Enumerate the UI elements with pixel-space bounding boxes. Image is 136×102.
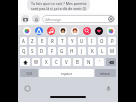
button[interactable]: T — [58, 37, 66, 45]
button[interactable]: F — [48, 47, 56, 55]
button[interactable]: R — [48, 37, 56, 45]
button[interactable]: ' — [95, 58, 104, 66]
button[interactable]: P — [108, 37, 116, 45]
button[interactable]: O — [98, 37, 106, 45]
staticText: E — [41, 38, 44, 44]
button[interactable]: Backspace — [106, 58, 116, 66]
staticText: R — [51, 38, 54, 44]
staticText: O — [100, 38, 104, 44]
button[interactable]: Dictation — [105, 85, 112, 92]
staticText: D — [40, 48, 44, 54]
staticText: ' — [99, 59, 100, 65]
button[interactable]: Z — [29, 37, 36, 45]
staticText: 123 — [26, 71, 32, 76]
button[interactable]: J — [78, 47, 86, 55]
staticText: Y — [71, 38, 74, 44]
staticText: Z — [31, 38, 34, 44]
button[interactable]: App — [95, 27, 103, 35]
button[interactable]: App Store — [32, 15, 40, 23]
staticText: Tu fais quoi ce soir ? Mes parents sont … — [31, 1, 87, 11]
staticText: T — [61, 38, 64, 44]
button[interactable]: 123 — [20, 69, 38, 77]
staticText: S — [31, 48, 34, 54]
button[interactable]: Send — [108, 16, 114, 22]
button[interactable]: M — [108, 47, 116, 55]
button[interactable]: App — [23, 27, 31, 35]
staticText: Q — [22, 48, 26, 54]
staticText: I — [91, 38, 93, 44]
button[interactable]: V — [62, 58, 71, 66]
button[interactable]: G — [58, 47, 66, 55]
button[interactable]: Shift — [20, 58, 30, 66]
button[interactable]: App — [71, 27, 79, 35]
staticText: retour — [100, 71, 111, 76]
staticText: H — [70, 48, 74, 54]
staticText: B — [76, 59, 79, 65]
staticText: J — [81, 48, 83, 54]
staticText: L — [101, 48, 104, 54]
staticText: N — [87, 59, 91, 65]
staticText: W — [34, 59, 39, 65]
button[interactable]: iMessage — [42, 15, 115, 23]
staticText: V — [65, 59, 68, 65]
staticText: G — [60, 48, 64, 54]
button[interactable]: H — [68, 47, 76, 55]
staticText: A — [22, 38, 25, 44]
button[interactable]: U — [78, 37, 86, 45]
button[interactable]: W — [32, 58, 40, 66]
button[interactable]: Q — [20, 47, 27, 55]
staticText: M — [110, 48, 114, 54]
button[interactable]: App — [59, 27, 67, 35]
button[interactable]: X — [42, 58, 50, 66]
button[interactable]: Y — [68, 37, 76, 45]
button[interactable]: L — [98, 47, 106, 55]
button[interactable]: App — [47, 27, 55, 35]
button[interactable]: retour — [95, 69, 116, 77]
staticText: iMessage — [45, 17, 61, 22]
button[interactable]: App — [35, 27, 43, 35]
staticText: K — [91, 48, 94, 54]
button[interactable]: Camera — [21, 15, 29, 23]
button[interactable]: D — [38, 47, 46, 55]
staticText: X — [45, 59, 48, 65]
button[interactable]: espace — [39, 69, 94, 77]
staticText: C — [55, 59, 58, 65]
staticText: P — [111, 38, 114, 44]
button[interactable]: S — [29, 47, 36, 55]
button[interactable]: K — [88, 47, 96, 55]
button[interactable]: App — [107, 27, 115, 35]
staticText: F — [51, 48, 54, 54]
button[interactable]: App — [83, 27, 91, 35]
staticText: U — [80, 38, 84, 44]
staticText: espace — [61, 71, 73, 76]
button[interactable]: N — [84, 58, 93, 66]
button[interactable]: Emoji — [24, 85, 31, 92]
button[interactable]: B — [73, 58, 82, 66]
button[interactable]: C — [52, 58, 60, 66]
button[interactable]: A — [20, 37, 27, 45]
button[interactable]: I — [88, 37, 96, 45]
button[interactable]: E — [38, 37, 46, 45]
